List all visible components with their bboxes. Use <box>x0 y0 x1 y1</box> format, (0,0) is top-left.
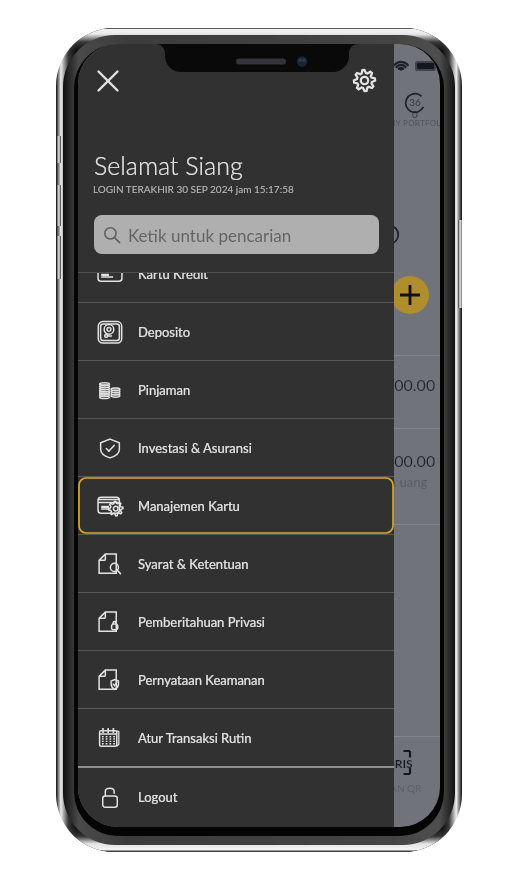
staticText: Manajemen Kartu <box>138 498 240 514</box>
button[interactable]: Ketik untuk pencarian <box>94 215 379 254</box>
button[interactable]: Manajemen Kartu <box>78 477 394 534</box>
staticText: 000.00 <box>385 451 436 470</box>
button[interactable]: Close <box>90 63 126 99</box>
button[interactable]: Investasi & Asuransi <box>78 419 394 476</box>
button[interactable]: Kartu Kredit <box>78 272 394 302</box>
button[interactable]: Atur Transaksi Rutin <box>78 709 394 766</box>
button[interactable]: Pernyataan Keamanan <box>78 651 394 708</box>
staticText: QRIS <box>385 756 413 770</box>
button[interactable]: Syarat & Ketentuan <box>78 535 394 592</box>
staticText: MY PORTFOLIO <box>388 118 440 128</box>
button[interactable]: Logout <box>78 768 394 825</box>
staticText: Deposito <box>138 324 191 340</box>
staticText: 360 <box>408 96 422 120</box>
staticText: LOGIN TERAKHIR 30 SEP 2024 jam 15:17:58 <box>93 183 294 195</box>
button[interactable]: Deposito <box>78 303 394 360</box>
staticText: ta uang <box>385 474 428 490</box>
staticText: Kartu Kredit <box>138 272 209 282</box>
staticText: 000.00 <box>385 375 436 394</box>
button[interactable]: Pemberitahuan Privasi <box>78 593 394 650</box>
staticText: Syarat & Ketentuan <box>138 556 249 572</box>
staticText: Ketik untuk pencarian <box>128 225 292 245</box>
staticText: Pemberitahuan Privasi <box>138 614 265 630</box>
staticText: Pinjaman <box>138 382 191 398</box>
staticText: Logout <box>138 789 178 805</box>
button[interactable]: Add <box>391 276 429 314</box>
staticText: Selamat Siang <box>94 150 243 180</box>
staticText: Pernyataan Keamanan <box>138 672 265 688</box>
staticText: SCAN QR <box>378 782 422 794</box>
staticText: Investasi & Asuransi <box>138 440 252 456</box>
button[interactable]: Pinjaman <box>78 361 394 418</box>
staticText: Atur Transaksi Rutin <box>138 730 252 746</box>
button[interactable]: Settings <box>346 62 382 98</box>
